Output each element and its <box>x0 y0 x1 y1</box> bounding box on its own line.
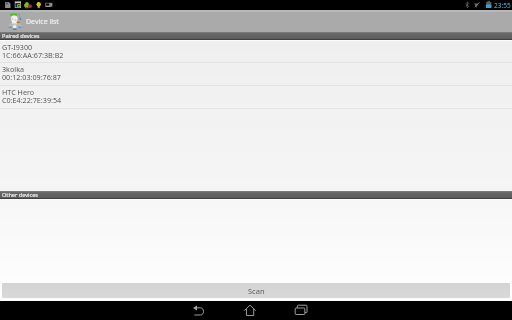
staticText: Scan <box>248 286 265 296</box>
button[interactable]: HTC Hero <box>0 86 512 109</box>
staticText: GT-I9300 <box>2 42 33 52</box>
staticText: C0:E4:22:7E:39:54 <box>2 95 62 105</box>
staticText: Paired devices <box>2 32 40 40</box>
staticText: HTC Hero <box>2 87 35 97</box>
staticText: Device list <box>26 17 59 27</box>
button[interactable]: Home <box>227 301 273 320</box>
button[interactable]: 3kolka <box>0 63 512 86</box>
staticText: 23:55 <box>494 1 511 10</box>
staticText: 1C:66:AA:67:3B:B2 <box>2 50 64 60</box>
button[interactable]: Recent apps <box>278 301 324 320</box>
staticText: Other devices <box>2 191 39 199</box>
staticText: 00:12:03:09:76:87 <box>2 72 61 82</box>
button[interactable]: Scan <box>2 283 510 298</box>
button[interactable]: Back <box>176 301 222 320</box>
staticText: 3kolka <box>2 64 25 74</box>
button[interactable]: GT-I9300 <box>0 41 512 63</box>
